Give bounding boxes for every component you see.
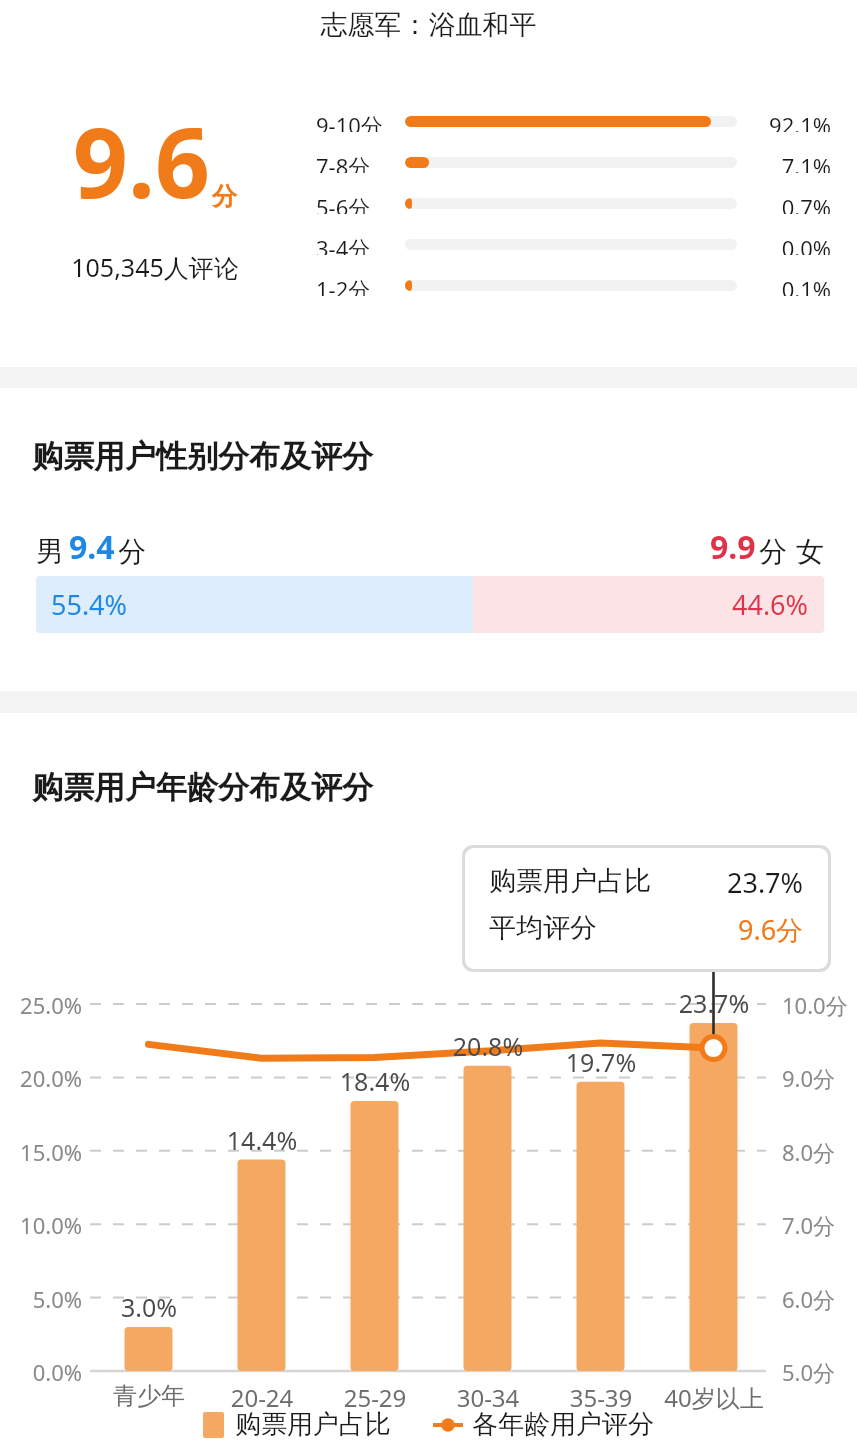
staticText: 7.1% (737, 151, 831, 173)
staticText: 7.0分 (782, 1210, 836, 1240)
staticText: 分 (118, 534, 146, 569)
staticText: 9.4 (69, 525, 115, 569)
staticText: 5.0% (4, 1284, 82, 1314)
staticText: 9-10分 (316, 110, 398, 132)
staticText: 40岁以上 (652, 1381, 776, 1414)
staticText: 平均评分 (489, 911, 597, 945)
staticText: 20.0% (4, 1063, 82, 1093)
staticText: 男 (36, 534, 64, 569)
staticText: 105,345人评论 (20, 250, 290, 284)
staticText: 6.0分 (782, 1284, 836, 1314)
staticText: 0.0% (4, 1357, 82, 1387)
button[interactable]: 55.4% (36, 576, 824, 633)
staticText: 9.6 (73, 95, 210, 226)
staticText: 25-29 (313, 1381, 437, 1414)
staticText: 购票用户年龄分布及评分 (32, 768, 373, 807)
staticText: 1-2分 (316, 274, 398, 296)
staticText: 92.1% (737, 110, 831, 132)
staticText: 5-6分 (316, 192, 398, 214)
staticText: 23.7% (654, 986, 774, 1020)
staticText: 女 (796, 534, 824, 569)
staticText: 18.4% (315, 1064, 435, 1098)
staticText: 分 (212, 181, 237, 212)
staticText: 19.7% (541, 1045, 661, 1079)
staticText: 30-34 (426, 1381, 550, 1414)
staticText: 3-4分 (316, 233, 398, 255)
staticText: 各年龄用户评分 (472, 1408, 654, 1441)
staticText: 9.9 (710, 525, 756, 569)
staticText: 0.7% (737, 192, 831, 214)
staticText: 25.0% (4, 990, 82, 1020)
staticText: 15.0% (4, 1137, 82, 1167)
staticText: 志愿军：浴血和平 (0, 8, 857, 42)
staticText: 分 (759, 534, 787, 569)
staticText: 55.4% (51, 586, 128, 623)
staticText: 9.6分 (738, 911, 804, 948)
staticText: 0.1% (737, 274, 831, 296)
staticText: 9.0分 (782, 1063, 836, 1093)
staticText: 10.0% (4, 1210, 82, 1240)
staticText: 14.4% (202, 1123, 322, 1157)
staticText: 购票用户占比 (489, 864, 651, 898)
staticText: 44.6% (732, 586, 809, 623)
staticText: 20.8% (428, 1029, 548, 1063)
staticText: 青少年 (87, 1381, 211, 1411)
staticText: 23.7% (727, 864, 804, 901)
staticText: 0.0% (737, 233, 831, 255)
staticText: 3.0% (89, 1290, 209, 1324)
staticText: 10.0分 (782, 990, 848, 1020)
staticText: 20-24 (200, 1381, 324, 1414)
staticText: 35-39 (539, 1381, 663, 1414)
staticText: 8.0分 (782, 1137, 836, 1167)
button[interactable]: 购票用户占比 (465, 848, 828, 969)
staticText: 购票用户性别分布及评分 (32, 437, 373, 476)
staticText: 5.0分 (782, 1357, 836, 1387)
staticText: 7-8分 (316, 151, 398, 173)
staticText: 购票用户占比 (235, 1408, 391, 1441)
